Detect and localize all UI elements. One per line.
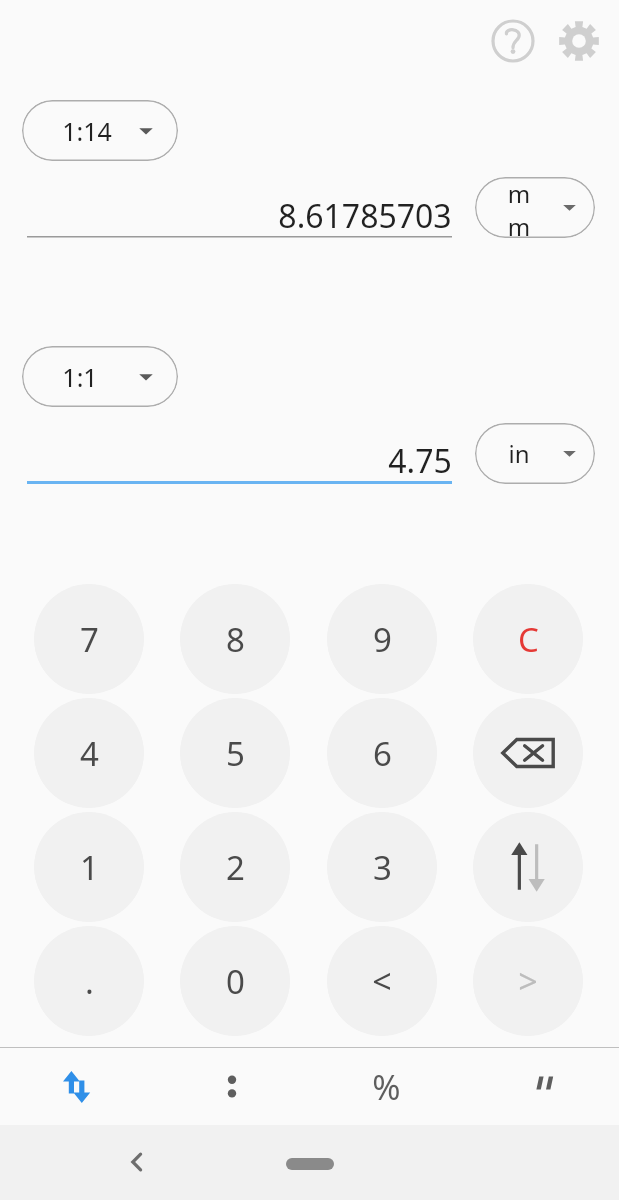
button[interactable]: Inches	[464, 1048, 619, 1125]
button[interactable]: Settings	[555, 17, 603, 65]
staticText: 8.61785703	[278, 194, 452, 238]
staticText: 5	[226, 731, 245, 776]
button[interactable]: Help	[489, 17, 537, 65]
staticText: 2	[226, 845, 245, 890]
button[interactable]: C	[473, 584, 583, 694]
button[interactable]: <	[327, 926, 437, 1036]
button[interactable]: 5	[180, 698, 290, 808]
button[interactable]: 1:14	[22, 100, 178, 161]
staticText: .	[85, 959, 94, 1004]
staticText: 8	[226, 617, 245, 662]
button[interactable]: in	[475, 423, 595, 484]
staticText: 3	[373, 845, 392, 890]
button[interactable]: 4.75	[27, 434, 452, 488]
staticText: >	[518, 958, 538, 1004]
button[interactable]: 6	[327, 698, 437, 808]
staticText: 7	[80, 617, 99, 662]
button[interactable]: Ratio	[154, 1048, 309, 1125]
button[interactable]: 8	[180, 584, 290, 694]
staticText: 1:1	[62, 360, 98, 394]
button[interactable]: Home	[286, 1158, 334, 1170]
button[interactable]: >	[473, 926, 583, 1036]
button[interactable]: 8.61785703	[27, 189, 452, 243]
staticText: 0	[226, 959, 245, 1004]
staticText: C	[518, 617, 539, 662]
staticText: 9	[373, 617, 392, 662]
staticText: 4	[80, 731, 99, 776]
button[interactable]: 4	[34, 698, 144, 808]
button[interactable]: 7	[34, 584, 144, 694]
button[interactable]: 1:1	[22, 346, 178, 407]
button[interactable]: 0	[180, 926, 290, 1036]
button[interactable]: Backspace	[473, 698, 583, 808]
staticText: 1	[80, 845, 99, 890]
staticText: 4.75	[388, 439, 452, 483]
button[interactable]: Back	[114, 1139, 160, 1185]
button[interactable]: Swap units	[0, 1048, 154, 1125]
staticText: <	[372, 958, 392, 1004]
staticText: 6	[373, 731, 392, 776]
staticText: in	[508, 437, 530, 470]
button[interactable]: 9	[327, 584, 437, 694]
button[interactable]: 1	[34, 812, 144, 922]
button[interactable]: 3	[327, 812, 437, 922]
button[interactable]: Percent	[309, 1048, 464, 1125]
button[interactable]: mm	[475, 177, 595, 238]
button[interactable]: Swap values	[473, 812, 583, 922]
staticText: mm	[497, 177, 541, 238]
button[interactable]: .	[34, 926, 144, 1036]
staticText: %	[372, 1064, 401, 1110]
button[interactable]: 2	[180, 812, 290, 922]
staticText: 1:14	[62, 114, 112, 148]
